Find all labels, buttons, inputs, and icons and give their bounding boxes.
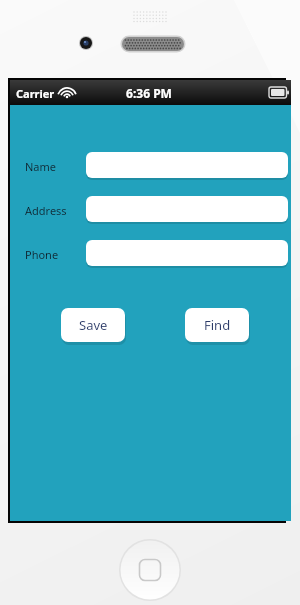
button[interactable]: Address input field <box>86 196 288 222</box>
button[interactable]: Find <box>185 308 249 342</box>
staticText: Find <box>204 316 231 334</box>
button[interactable]: Name input field <box>86 152 288 178</box>
staticText: Address <box>25 203 67 218</box>
staticText: 6:36 PM <box>126 85 172 101</box>
button[interactable]: Save <box>61 308 125 342</box>
staticText: Carrier <box>16 86 55 101</box>
staticText: Name <box>25 159 57 174</box>
staticText: Phone <box>25 247 59 262</box>
button[interactable]: Phone input field <box>86 240 288 266</box>
staticText: Save <box>79 316 108 334</box>
